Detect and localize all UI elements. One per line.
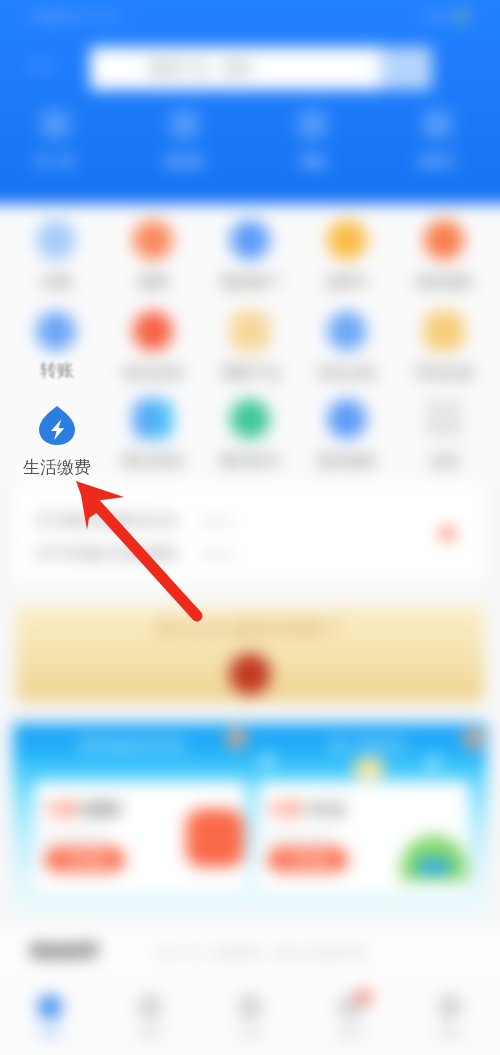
button[interactable]: 收付款 — [125, 110, 250, 169]
staticText: 大礼包 — [303, 801, 345, 819]
staticText: Baidu 经验 — [384, 1008, 492, 1037]
staticText: 立即领取 — [284, 852, 332, 867]
staticText: 中国移动 ılıl 4G ⋯ — [28, 8, 132, 24]
button[interactable]: 新人专享好礼 — [250, 723, 487, 913]
button[interactable]: 扫一扫 — [0, 110, 125, 169]
button[interactable]: 手机充值 — [395, 311, 492, 383]
staticText: 满100元可用 — [45, 827, 108, 842]
button[interactable]: 新年好礼邀您来领取了 — [16, 605, 484, 702]
staticText: 网点查询 — [123, 452, 183, 471]
button[interactable]: 理财 — [100, 978, 200, 1039]
staticText: 我的账户 — [220, 273, 280, 292]
button[interactable]: 更多服务 — [298, 399, 395, 471]
staticText: 信用卡 — [324, 273, 369, 292]
staticText: 信用卡 — [418, 153, 457, 169]
button[interactable]: 信用卡 — [375, 110, 500, 169]
button[interactable]: 发现 — [300, 978, 400, 1039]
staticText: 生活缴费 — [23, 457, 91, 478]
staticText: 优惠券 — [80, 801, 122, 819]
button[interactable]: 我的账户 — [201, 220, 298, 292]
staticText: 转账 — [300, 153, 326, 169]
staticText: 理财产品 — [220, 364, 280, 383]
staticText: 立减 — [45, 799, 77, 819]
button[interactable]: 贷款服务 — [395, 220, 492, 292]
staticText: 关于手机银行升级的通知 — [35, 545, 178, 561]
staticText: 转账 — [40, 360, 74, 381]
staticText: 手机充值 — [414, 364, 474, 383]
button[interactable] — [8, 399, 104, 452]
staticText: 精选推荐 — [30, 941, 98, 962]
staticText: 立即领取 — [61, 852, 109, 867]
staticText: 收付款 — [165, 153, 204, 169]
staticText: 限时抢购活动专场 — [80, 737, 184, 753]
staticText: 关于系统升级维护的公告 — [35, 512, 178, 528]
staticText: 立减 — [268, 799, 300, 819]
button[interactable]: 余额 — [8, 220, 104, 292]
staticText: 存款业务 — [317, 364, 377, 383]
staticText: 缴费 — [138, 273, 168, 292]
button[interactable]: 全部 — [395, 399, 492, 471]
staticText: 首页 — [39, 1025, 61, 1039]
staticText: 10:25 🔋 — [421, 8, 470, 24]
button[interactable]: 搜索产品、服务 — [90, 47, 432, 90]
staticText: 全部 — [429, 452, 459, 471]
button[interactable]: 存款业务 — [298, 311, 395, 383]
button[interactable]: 生活缴费 — [0, 406, 113, 478]
button[interactable]: 生活 — [200, 978, 300, 1039]
button[interactable]: 理财产品 — [201, 311, 298, 383]
staticText: 贷款服务 — [414, 273, 474, 292]
staticText: 新年好礼邀您来领取了 — [155, 617, 345, 641]
button[interactable]: 关于系统升级维护的公告 — [13, 484, 487, 582]
staticText: 收付款码 — [123, 364, 183, 383]
button[interactable]: 预约取号 — [201, 399, 298, 471]
button[interactable]: 收付款码 — [104, 311, 201, 383]
staticText: 更多服务 — [317, 452, 377, 471]
button[interactable]: 缴费 — [104, 220, 201, 292]
staticText: 预约取号 — [220, 452, 280, 471]
button[interactable] — [8, 311, 104, 364]
button[interactable]: 首页 — [0, 978, 100, 1039]
staticText: 满100元可用 — [268, 827, 331, 842]
button[interactable]: 网点查询 — [104, 399, 201, 471]
button[interactable]: 限时抢购活动专场 — [13, 723, 250, 913]
button[interactable]: 我的 — [400, 978, 500, 1039]
staticText: 搜索产品、服务 — [148, 59, 253, 78]
button[interactable]: 信用卡 — [298, 220, 395, 292]
staticText: 余额 — [41, 273, 71, 292]
button[interactable]: 转账 — [250, 110, 375, 169]
staticText: 新人专享好礼 — [330, 737, 408, 753]
